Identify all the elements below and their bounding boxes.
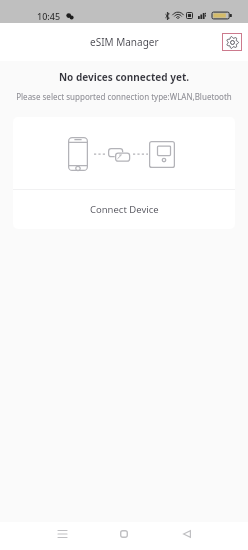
button[interactable]: Recent apps xyxy=(40,520,85,548)
staticText: eSIM Manager xyxy=(90,35,159,49)
button[interactable]: Home xyxy=(101,520,146,548)
staticText: Please select supported connection type:… xyxy=(0,91,248,102)
button[interactable]: Settings xyxy=(222,33,242,51)
button[interactable]: Connect Device xyxy=(13,190,235,229)
button[interactable]: Back xyxy=(164,520,209,548)
staticText: No devices connected yet. xyxy=(0,70,248,84)
staticText: Connect Device xyxy=(90,203,159,216)
staticText: 10:45 xyxy=(37,10,61,22)
